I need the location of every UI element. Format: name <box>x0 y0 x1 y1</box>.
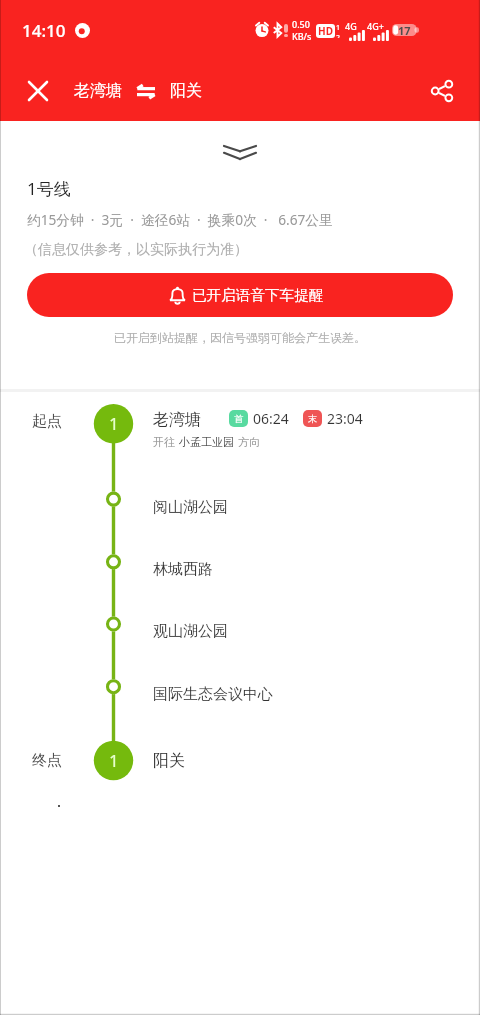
button[interactable]: Expand details <box>0 121 480 165</box>
staticText: 起点 <box>32 412 62 431</box>
staticText: 末 <box>308 413 317 424</box>
staticText: （信息仅供参考，以实际执行为准） <box>24 241 248 259</box>
staticText: KB/s <box>292 30 312 42</box>
staticText: 终点 <box>32 751 62 770</box>
staticText: HD <box>318 24 333 38</box>
button[interactable]: 已开启语音下车提醒 <box>27 273 453 317</box>
staticText: 17 <box>398 23 411 38</box>
staticText: 约15分钟 · 3元 · 途径6站 · 换乘0次 · 6.67公里 <box>27 210 333 229</box>
staticText: 4G <box>345 20 357 32</box>
staticText: 阳关 <box>153 751 185 771</box>
staticText: 开往 <box>153 435 175 449</box>
staticText: 2 <box>336 33 341 38</box>
staticText: 4G+ <box>367 20 384 32</box>
staticText: 林城西路 <box>153 560 213 579</box>
staticText: 观山湖公园 <box>153 622 228 641</box>
button[interactable]: 老湾塘 <box>74 81 202 101</box>
staticText: 首 <box>234 413 243 424</box>
button[interactable]: Share <box>424 73 460 109</box>
staticText: 小孟工业园 <box>179 435 234 449</box>
staticText: 阳关 <box>170 81 202 101</box>
button[interactable]: Close <box>20 73 56 109</box>
staticText: 老湾塘 <box>74 81 122 101</box>
staticText: 国际生态会议中心 <box>153 685 273 704</box>
staticText: 方向 <box>238 435 260 449</box>
staticText: 23:04 <box>327 409 363 428</box>
staticText: 14:10 <box>22 19 66 42</box>
staticText: 已开启语音下车提醒 <box>192 286 324 304</box>
staticText: 老湾塘 <box>153 410 201 430</box>
staticText: 0.50 <box>292 18 310 30</box>
staticText: 1 <box>109 749 119 772</box>
staticText: 1 <box>109 412 119 435</box>
staticText: 1 <box>336 23 341 33</box>
staticText: 阅山湖公园 <box>153 498 228 517</box>
staticText: 06:24 <box>253 409 289 428</box>
staticText: 已开启到站提醒，因信号强弱可能会产生误差。 <box>114 330 366 345</box>
staticText: 1号线 <box>27 177 71 200</box>
